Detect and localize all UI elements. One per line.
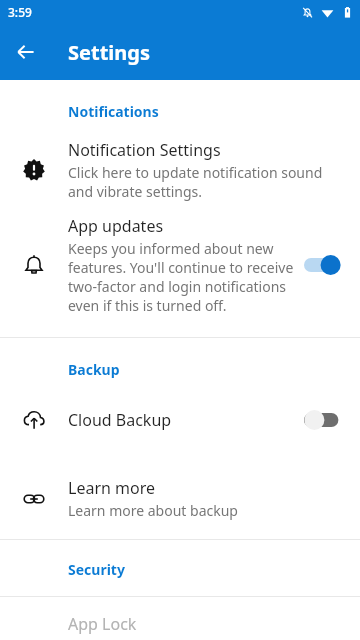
button[interactable]: Learn more [0, 477, 360, 520]
button[interactable]: Cloud Backup [0, 407, 360, 433]
staticText: Notification Settings [68, 139, 221, 161]
staticText: Security [68, 560, 360, 579]
staticText: Click here to update notification sound … [68, 163, 336, 201]
button[interactable]: Back [6, 32, 46, 72]
button[interactable]: Notification Settings [0, 139, 360, 201]
staticText: App Lock [68, 613, 137, 635]
button[interactable]: App updates toggle, on [304, 252, 344, 278]
button[interactable]: Cloud Backup toggle, off [304, 407, 344, 433]
staticText: 3:59 [8, 4, 32, 20]
staticText: App updates [68, 215, 164, 237]
staticText: Cloud Backup [68, 409, 172, 431]
staticText: Settings [68, 39, 150, 66]
staticText: Backup [68, 360, 360, 379]
staticText: Notifications [68, 102, 360, 121]
staticText: Learn more [68, 477, 155, 499]
button[interactable]: App updates [0, 215, 360, 315]
staticText: Learn more about backup [68, 501, 238, 520]
staticText: Keeps you informed about new features. Y… [68, 239, 296, 315]
